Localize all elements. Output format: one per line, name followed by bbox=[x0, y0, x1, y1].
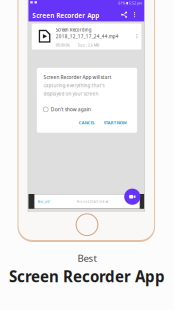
staticText: Size : 2.6 MB bbox=[78, 42, 99, 47]
staticText: Screen Recording bbox=[56, 27, 92, 33]
staticText: This is a 320x50 test ad. bbox=[76, 200, 109, 203]
button[interactable]: More options bbox=[130, 9, 139, 20]
staticText: Don't show again bbox=[51, 106, 91, 113]
button[interactable]: Screen Recording bbox=[32, 24, 141, 49]
staticText: Nice job! bbox=[38, 200, 51, 203]
staticText: displayed on your screen. bbox=[43, 91, 99, 97]
staticText: Screen Recorder App bbox=[9, 266, 165, 286]
staticText: 2018_12_17_17_24_44.mp4 bbox=[56, 33, 119, 39]
staticText: Screen Recorder App will start bbox=[43, 74, 111, 80]
staticText: Best bbox=[77, 252, 96, 264]
button[interactable]: CANCEL bbox=[79, 120, 95, 125]
button[interactable]: Don't show again bbox=[43, 106, 91, 113]
staticText: 00:00:06 bbox=[56, 42, 70, 47]
button[interactable]: Share bbox=[119, 9, 130, 20]
staticText: CANCEL bbox=[79, 120, 95, 125]
button[interactable]: Record bbox=[124, 189, 140, 205]
staticText: 5:52 pm bbox=[129, 1, 142, 5]
staticText: 61% bbox=[118, 1, 125, 5]
staticText: Screen Recorder App bbox=[32, 11, 99, 20]
staticText: START NOW bbox=[104, 120, 127, 125]
staticText: capturing everything that's bbox=[43, 82, 104, 89]
button[interactable]: START NOW bbox=[104, 120, 127, 125]
